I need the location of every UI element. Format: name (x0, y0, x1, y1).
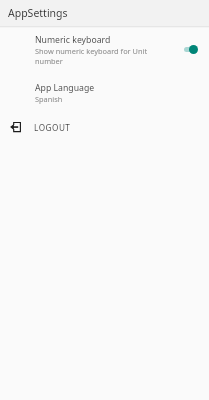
staticText: Spanish (35, 94, 63, 104)
button[interactable]: App Language (0, 71, 209, 112)
other: Logout (11, 121, 22, 132)
staticText: LOGOUT (34, 122, 71, 133)
staticText: Show numeric keyboard for Unit number (35, 46, 148, 66)
staticText: App Language (35, 82, 95, 94)
button[interactable]: Numeric keyboard (0, 28, 209, 71)
button[interactable]: Logout (0, 112, 209, 142)
staticText: Numeric keyboard (35, 34, 111, 46)
staticText: AppSettings (8, 6, 68, 20)
